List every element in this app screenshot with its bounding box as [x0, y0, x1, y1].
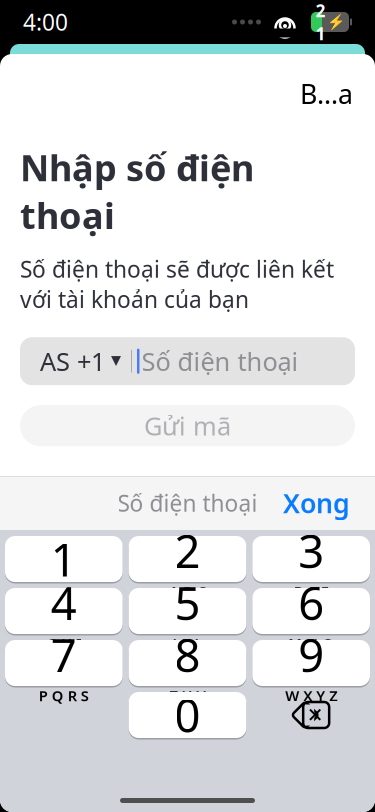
staticText: 0 — [174, 685, 200, 745]
button[interactable]: 2 — [129, 536, 246, 582]
staticText: Gửi mã — [144, 409, 231, 442]
staticText: P Q R S — [39, 686, 89, 705]
staticText: G H I — [46, 634, 81, 653]
staticText: Số điện thoại — [117, 488, 257, 518]
button[interactable]: Xong — [263, 475, 370, 531]
staticText: 9 — [298, 625, 324, 685]
staticText: 4 — [51, 573, 77, 633]
button[interactable]: 6 — [252, 588, 370, 634]
staticText: 21 — [315, 0, 325, 45]
staticText: ▾ — [111, 348, 121, 371]
staticText: 1 — [51, 529, 77, 589]
button[interactable]: 0 — [129, 692, 246, 738]
button[interactable]: AS +1 — [20, 337, 131, 385]
staticText: T U V — [169, 686, 205, 705]
staticText: M N O — [288, 634, 334, 653]
button[interactable]: 7 — [5, 640, 123, 686]
staticText: ⚡ — [326, 14, 344, 30]
button[interactable]: 3 — [252, 536, 370, 582]
button[interactable]: 9 — [252, 640, 370, 686]
staticText: 4:00 — [23, 7, 68, 37]
staticText: 2 — [174, 521, 200, 581]
staticText: Xong — [283, 485, 350, 521]
button[interactable]: 1 — [5, 536, 123, 582]
button[interactable]: Delete — [252, 692, 370, 738]
staticText: Số điện thoại sẽ được liên kết với tài k… — [20, 254, 334, 314]
staticText: D E F — [294, 582, 329, 601]
staticText: J K L — [172, 634, 202, 653]
staticText: W X Y Z — [285, 686, 337, 705]
button[interactable]: 8 — [129, 640, 246, 686]
staticText: 8 — [174, 625, 200, 685]
staticText: 6 — [298, 573, 324, 633]
staticText: A B C — [169, 582, 206, 601]
button[interactable]: 5 — [129, 588, 246, 634]
staticText: 7 — [51, 625, 77, 685]
staticText: AS +1 — [40, 344, 105, 378]
staticText: B…a — [300, 76, 353, 111]
button[interactable]: 4 — [5, 588, 123, 634]
button[interactable]: B…a — [292, 68, 361, 119]
staticText: ✕ — [307, 704, 324, 726]
staticText: Nhập số điện thoại — [20, 143, 254, 239]
staticText: 5 — [174, 573, 200, 633]
staticText: 3 — [298, 521, 324, 581]
staticText: Số điện thoại — [141, 344, 298, 378]
button[interactable]: Gửi mã — [20, 405, 355, 446]
